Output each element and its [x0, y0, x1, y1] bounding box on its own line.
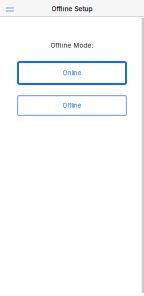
button[interactable]: Menu: [0, 0, 20, 16]
staticText: Offline Mode:: [50, 42, 93, 49]
staticText: Offline: [62, 102, 81, 109]
button[interactable]: Online: [17, 61, 127, 85]
button[interactable]: Offline: [17, 95, 127, 116]
staticText: Online: [62, 69, 81, 77]
staticText: Offline Setup: [51, 5, 92, 13]
